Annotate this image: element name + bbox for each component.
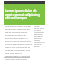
staticText: Lorem ipsum dolor sit amet consectetur a… (34, 25, 45, 47)
staticText: Lorem ipsum dolor sit amet consect adipi… (5, 9, 43, 19)
staticText: Lorem ipsum dolor sit amet consectetur a… (5, 25, 32, 58)
staticText: Lorem ipsum dolor sit amet consectetur (5, 58, 27, 60)
